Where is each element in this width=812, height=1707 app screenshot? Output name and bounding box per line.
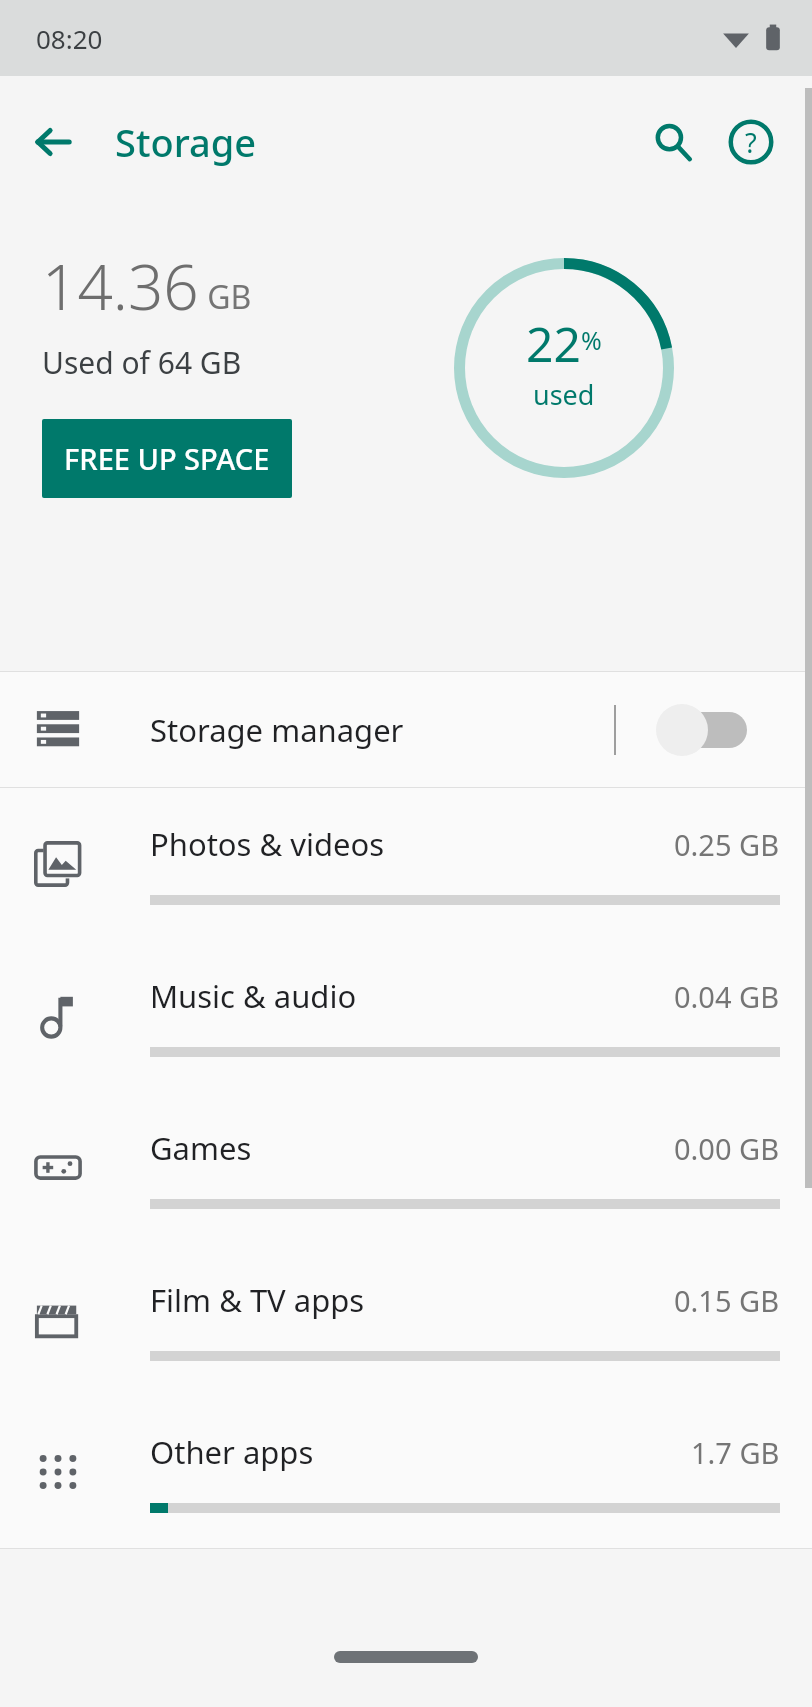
staticText: used — [533, 376, 595, 413]
button[interactable]: Photos & videos — [0, 788, 812, 940]
staticText: 14.36 — [42, 244, 199, 328]
staticText: ? — [745, 124, 757, 161]
staticText: Photos & videos — [150, 823, 385, 865]
button[interactable]: Search — [634, 103, 712, 181]
button[interactable]: Film & TV apps — [0, 1244, 812, 1396]
staticText: 0.25 GB — [674, 825, 780, 864]
button[interactable]: Back — [18, 107, 88, 177]
staticText: % — [581, 323, 602, 357]
staticText: 1.7 GB — [691, 1433, 780, 1472]
staticText: GB — [199, 275, 252, 319]
staticText: Storage — [115, 116, 257, 168]
staticText: 22 — [526, 311, 581, 376]
button[interactable]: Help — [712, 103, 790, 181]
staticText: Storage manager — [150, 709, 404, 751]
button[interactable]: Music & audio — [0, 940, 812, 1092]
button[interactable]: Storage manager toggle — [656, 702, 752, 758]
staticText: Music & audio — [150, 975, 357, 1017]
staticText: Other apps — [150, 1431, 314, 1473]
staticText: 0.00 GB — [674, 1129, 780, 1168]
staticText: Used of 64 GB — [42, 342, 242, 383]
staticText: Film & TV apps — [150, 1279, 365, 1321]
staticText: 0.04 GB — [674, 977, 780, 1016]
staticText: FREE UP SPACE — [64, 439, 270, 478]
button[interactable]: FREE UP SPACE — [42, 419, 292, 498]
button[interactable]: Other apps — [0, 1396, 812, 1548]
button[interactable]: Storage manager — [0, 672, 812, 787]
staticText: 0.15 GB — [674, 1281, 780, 1320]
staticText: Games — [150, 1127, 252, 1169]
button[interactable]: Games — [0, 1092, 812, 1244]
staticText: 08:20 — [36, 21, 103, 56]
